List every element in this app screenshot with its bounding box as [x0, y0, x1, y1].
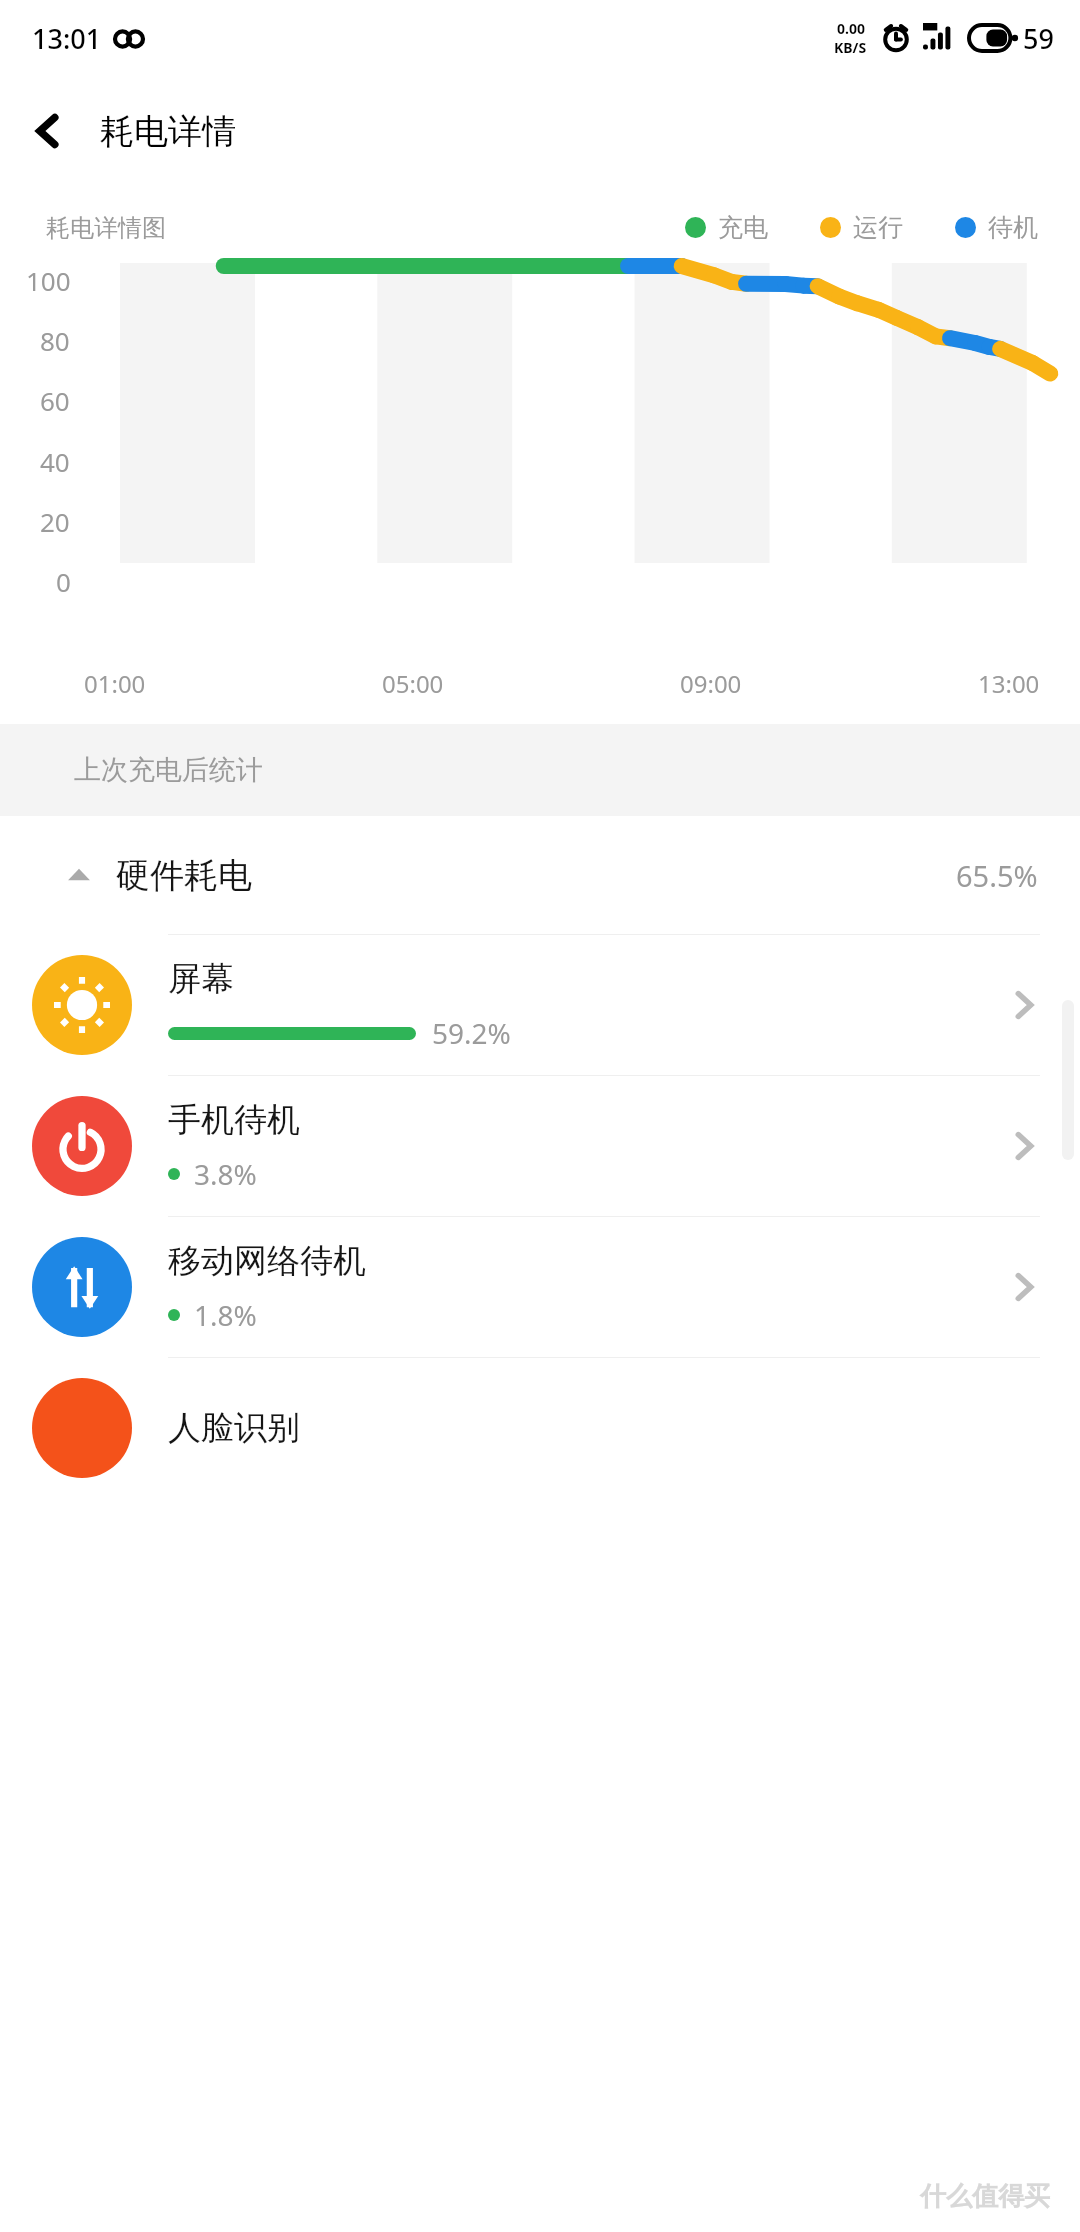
button[interactable]: 人脸识别	[0, 1358, 1080, 1498]
staticText: 13:01	[32, 20, 102, 57]
staticText: 01:00	[84, 667, 146, 700]
staticText: 59.2%	[432, 1014, 511, 1052]
staticText: 硬件耗电	[116, 854, 252, 897]
staticText: 耗电详情图	[46, 213, 166, 243]
staticText: 什么值得买	[920, 2180, 1050, 2213]
button[interactable]: 硬件耗电	[0, 816, 1080, 934]
staticText: 待机	[988, 212, 1038, 243]
staticText: 屏幕	[168, 958, 234, 1000]
staticText: 1.8%	[194, 1296, 257, 1334]
staticText: 40	[40, 444, 70, 479]
staticText: 80	[40, 323, 70, 358]
staticText: 59	[1023, 20, 1054, 57]
button[interactable]: 移动网络待机	[0, 1217, 1080, 1357]
staticText: 耗电详情	[100, 110, 236, 153]
staticText: 手机待机	[168, 1099, 300, 1141]
other: Mobile network idle	[984, 1247, 1064, 1327]
staticText: KB/S	[834, 38, 867, 57]
staticText: 05:00	[382, 667, 444, 700]
staticText: 人脸识别	[168, 1407, 300, 1449]
staticText: 0	[56, 564, 71, 599]
button[interactable]: Back	[10, 93, 86, 169]
staticText: 09:00	[680, 667, 742, 700]
staticText: 充电	[718, 212, 768, 243]
staticText: 3.8%	[194, 1155, 257, 1193]
staticText: 上次充电后统计	[74, 753, 263, 787]
staticText: 60	[40, 383, 70, 418]
staticText: 13:00	[978, 667, 1040, 700]
other: Phone idle	[984, 1106, 1064, 1186]
staticText: 100	[26, 263, 71, 298]
staticText: 运行	[853, 212, 903, 243]
staticText: 0.00	[837, 19, 865, 38]
staticText: 65.5%	[956, 856, 1038, 895]
button[interactable]: 屏幕	[0, 935, 1080, 1075]
staticText: 移动网络待机	[168, 1240, 366, 1282]
button[interactable]: 手机待机	[0, 1076, 1080, 1216]
other: Screen	[984, 965, 1064, 1045]
staticText: 20	[40, 504, 70, 539]
